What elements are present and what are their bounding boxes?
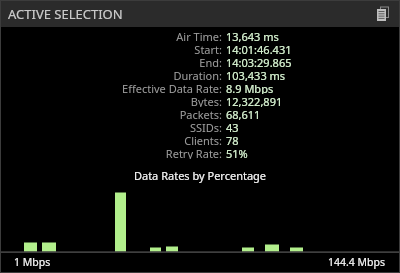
staticText: Packets: bbox=[0, 107, 222, 120]
staticText: 78 bbox=[226, 133, 239, 146]
staticText: 43 bbox=[226, 120, 239, 133]
staticText: ACTIVE SELECTION bbox=[8, 5, 123, 23]
staticText: 12,322,891 bbox=[226, 94, 283, 107]
staticText: End: bbox=[0, 55, 222, 68]
staticText: Air Time: bbox=[0, 29, 222, 42]
staticText: Clients: bbox=[0, 133, 222, 146]
staticText: SSIDs: bbox=[0, 120, 222, 133]
staticText: 14:01:46.431 bbox=[226, 42, 292, 55]
staticText: 144.4 Mbps bbox=[328, 255, 386, 269]
staticText: Duration: bbox=[0, 68, 222, 81]
staticText: 68,611 bbox=[226, 107, 261, 120]
staticText: Bytes: bbox=[0, 94, 222, 107]
staticText: 51% bbox=[226, 146, 248, 159]
staticText: Start: bbox=[0, 42, 222, 55]
staticText: 1 Mbps bbox=[14, 255, 51, 269]
staticText: Effective Data Rate: bbox=[0, 81, 222, 94]
staticText: 13,643 ms bbox=[226, 29, 279, 42]
staticText: 14:03:29.865 bbox=[226, 55, 292, 68]
staticText: 103,433 ms bbox=[226, 68, 286, 81]
staticText: Retry Rate: bbox=[0, 146, 222, 159]
staticText: 8.9 Mbps bbox=[226, 81, 274, 94]
button[interactable]: Copy bbox=[372, 3, 394, 25]
staticText: Data Rates by Percentage bbox=[0, 168, 400, 183]
